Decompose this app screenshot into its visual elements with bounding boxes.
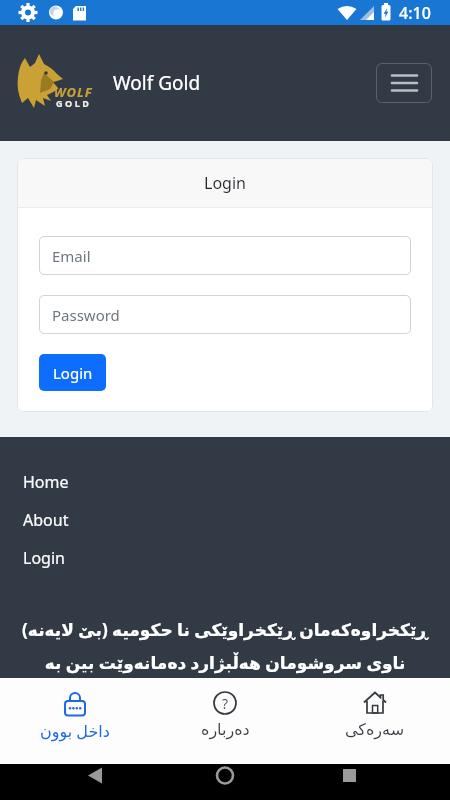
button[interactable] bbox=[376, 63, 432, 103]
button[interactable]: Login bbox=[39, 354, 106, 391]
staticText: Email bbox=[52, 246, 91, 266]
staticText: About bbox=[23, 509, 69, 531]
staticText: داخل بوون bbox=[40, 720, 110, 742]
staticText: Wolf Gold bbox=[113, 70, 201, 96]
staticText: WOLF bbox=[54, 83, 93, 101]
button[interactable]: داخل بوون bbox=[0, 678, 150, 764]
button[interactable]: Email bbox=[39, 236, 411, 275]
button[interactable]: Home bbox=[23, 471, 69, 493]
staticText: Home bbox=[23, 471, 69, 493]
staticText: ? bbox=[222, 694, 229, 713]
button[interactable]: ? bbox=[150, 678, 300, 764]
staticText: دەربارە bbox=[201, 720, 250, 739]
button[interactable]: Password bbox=[39, 295, 411, 334]
staticText: ڕێکخراوەکەمان ڕێکخراوێکی نا حکومیە (بێ ل… bbox=[0, 618, 450, 641]
staticText: GOLD bbox=[56, 97, 92, 109]
staticText: ناوی سروشومان هەڵبژارد دەمانەوێت بین بە bbox=[0, 651, 450, 674]
staticText: Login bbox=[23, 547, 65, 569]
staticText: سەرەکی bbox=[345, 720, 405, 739]
button[interactable]: سەرەکی bbox=[300, 678, 450, 764]
button[interactable]: Login bbox=[23, 547, 65, 569]
button[interactable]: About bbox=[23, 509, 69, 531]
staticText: Login bbox=[53, 363, 93, 383]
staticText: Password bbox=[52, 305, 120, 325]
staticText: Login bbox=[204, 172, 246, 194]
staticText: 4:10 bbox=[399, 2, 431, 24]
